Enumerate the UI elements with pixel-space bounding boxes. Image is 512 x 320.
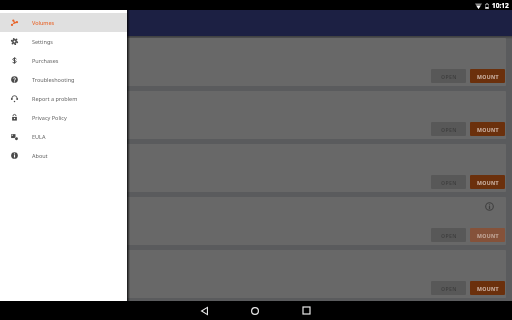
button[interactable]: OPEN [431,122,466,136]
staticText: OPEN [441,285,457,292]
staticText: OPEN [441,232,457,239]
staticText: OPEN [441,179,457,186]
button[interactable]: OPEN [4,91,506,139]
staticText: Troubleshooting [32,76,75,83]
button[interactable]: About [0,146,127,165]
button[interactable]: OPEN [431,228,466,242]
button[interactable]: Info [4,197,506,245]
staticText: Report a problem [32,95,78,102]
staticText: MOUNT [477,126,499,133]
staticText: MOUNT [477,73,499,80]
button[interactable]: OPEN [4,38,506,86]
button[interactable]: Back [190,301,218,320]
staticText: MOUNT [477,285,499,292]
staticText: MOUNT [477,232,499,239]
button[interactable]: Report a problem [0,89,127,108]
staticText: OPEN [441,73,457,80]
button[interactable]: Info [485,202,494,211]
button[interactable]: MOUNT [470,228,505,242]
button[interactable]: OPEN [4,144,506,192]
button[interactable]: Settings [0,32,127,51]
button[interactable]: Volumes [0,13,127,32]
button[interactable]: OPEN [4,250,506,298]
staticText: MOUNT [477,179,499,186]
staticText: OPEN [441,126,457,133]
staticText: Volumes [32,19,55,26]
button[interactable]: MOUNT [470,69,505,83]
button[interactable]: Privacy Policy [0,108,127,127]
button[interactable]: Recents [292,301,320,320]
button[interactable]: Purchases [0,51,127,70]
button[interactable]: OPEN [431,281,466,295]
button[interactable]: OPEN [431,69,466,83]
button[interactable]: MOUNT [470,281,505,295]
staticText: Purchases [32,57,59,64]
staticText: 10:12 [492,1,509,10]
button[interactable]: Home [241,301,269,320]
staticText: About [32,152,48,159]
staticText: EULA [32,133,46,140]
button[interactable]: MOUNT [470,122,505,136]
staticText: Settings [32,38,53,45]
button[interactable]: MOUNT [470,175,505,189]
button[interactable]: OPEN [431,175,466,189]
staticText: Privacy Policy [32,114,67,121]
button[interactable]: Troubleshooting [0,70,127,89]
button[interactable]: EULA [0,127,127,146]
